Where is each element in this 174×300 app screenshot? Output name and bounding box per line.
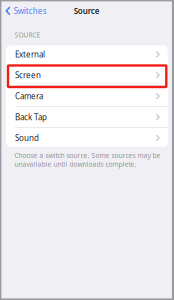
staticText: Screen xyxy=(15,70,41,80)
button[interactable]: Camera xyxy=(6,86,168,107)
button[interactable]: Screen xyxy=(6,65,168,86)
staticText: Choose a switch source. Some sources may… xyxy=(14,151,160,169)
staticText: External xyxy=(15,49,45,60)
button[interactable]: Switches xyxy=(1,2,51,20)
staticText: Camera xyxy=(15,91,43,101)
staticText: Switches xyxy=(14,6,47,16)
staticText: Sound xyxy=(15,133,39,143)
button[interactable]: Sound xyxy=(6,128,168,148)
staticText: SOURCE xyxy=(14,30,40,39)
staticText: Source xyxy=(74,6,100,16)
button[interactable]: External xyxy=(6,44,168,65)
staticText: Back Tap xyxy=(15,112,47,122)
button[interactable]: Back Tap xyxy=(6,107,168,128)
